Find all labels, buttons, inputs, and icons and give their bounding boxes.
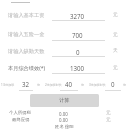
staticText: 3倍加班时长: [89, 83, 106, 87]
staticText: 32: [22, 80, 30, 88]
staticText: 计算: [59, 97, 70, 104]
staticText: 0: [76, 48, 80, 56]
staticText: 元: [113, 32, 118, 38]
staticText: 2倍加班时长: [45, 83, 62, 87]
staticText: 40: [65, 80, 73, 88]
button[interactable]: [0, 58, 130, 75]
button[interactable]: [44, 78, 86, 92]
staticText: 元: [106, 110, 111, 116]
staticText: 倍: [37, 83, 40, 87]
staticText: 最终应得: [12, 117, 30, 123]
button[interactable]: [0, 41, 130, 58]
button[interactable]: [0, 25, 130, 42]
staticText: 请输入五险一金: [8, 31, 45, 38]
staticText: 0.00: [59, 111, 68, 117]
staticText: 1300: [70, 64, 85, 72]
staticText: 个人所得税: [9, 110, 31, 116]
staticText: 700: [72, 31, 83, 39]
button[interactable]: [0, 78, 42, 92]
staticText: 0.00: [59, 117, 68, 123]
staticText: 倍: [81, 83, 84, 87]
button[interactable]: 计算: [30, 94, 99, 107]
staticText: 请输入基本工资: [8, 12, 45, 19]
staticText: 请输入缺勤天数: [8, 48, 45, 55]
staticText: 3270: [70, 12, 85, 20]
staticText: 1.5倍加班: [1, 83, 15, 87]
button[interactable]: [0, 5, 130, 22]
staticText: 天: [113, 48, 118, 54]
staticText: 倍: [123, 83, 126, 87]
staticText: 0: [111, 80, 115, 88]
staticText: 本月综合绩效(*): [8, 64, 46, 71]
button[interactable]: [88, 78, 130, 92]
staticText: 元: [106, 117, 111, 123]
staticText: 元: [113, 65, 118, 71]
staticText: 元: [113, 12, 118, 18]
staticText: 姓名 徐阳: [55, 123, 74, 129]
